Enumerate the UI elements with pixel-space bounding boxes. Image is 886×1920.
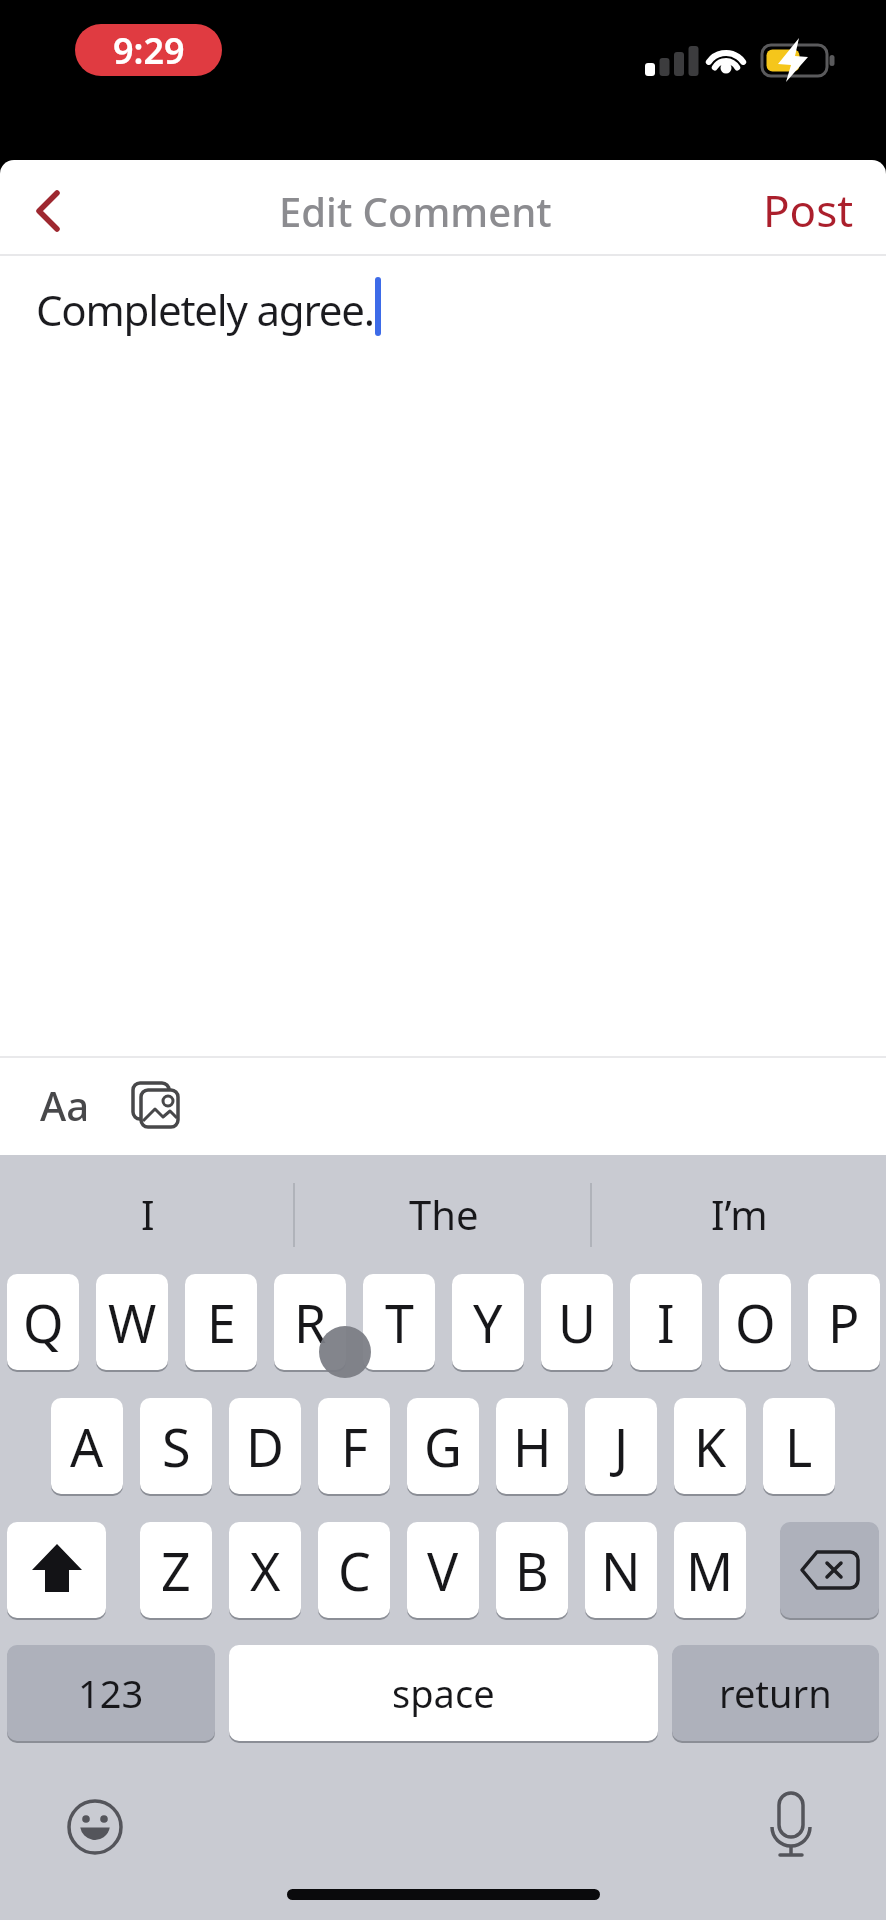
staticText: X [250, 1535, 281, 1606]
staticText: return [719, 1667, 832, 1719]
button[interactable]: B [496, 1522, 568, 1618]
staticText: R [294, 1287, 327, 1358]
button[interactable]: Q [7, 1274, 79, 1370]
button[interactable]: W [96, 1274, 168, 1370]
button[interactable]: N [585, 1522, 657, 1618]
button[interactable]: T [363, 1274, 435, 1370]
staticText: B [515, 1535, 549, 1606]
button[interactable]: The [296, 1172, 591, 1256]
staticText: Aa [40, 1078, 90, 1132]
staticText: H [513, 1411, 552, 1482]
staticText: V [427, 1535, 459, 1606]
button[interactable]: K [674, 1398, 746, 1494]
staticText: E [207, 1287, 236, 1358]
button[interactable]: 9:29 [75, 24, 222, 76]
button[interactable]: S [140, 1398, 212, 1494]
button[interactable]: P [808, 1274, 880, 1370]
staticText: P [828, 1287, 860, 1358]
button[interactable]: E [185, 1274, 257, 1370]
button[interactable]: G [407, 1398, 479, 1494]
button[interactable] [780, 1522, 879, 1618]
staticText: G [424, 1411, 462, 1482]
staticText: K [694, 1411, 727, 1482]
staticText: I’m [711, 1187, 768, 1241]
button[interactable]: F [318, 1398, 390, 1494]
staticText: Q [23, 1287, 64, 1358]
staticText: D [246, 1411, 284, 1482]
button[interactable]: Post [750, 180, 866, 240]
button[interactable]: return [672, 1645, 879, 1741]
staticText: space [392, 1667, 495, 1719]
button[interactable] [60, 1792, 130, 1862]
staticText: L [785, 1411, 813, 1482]
button[interactable]: J [585, 1398, 657, 1494]
button[interactable]: O [719, 1274, 791, 1370]
staticText: J [614, 1411, 629, 1482]
button[interactable]: R [274, 1274, 346, 1370]
staticText: Edit Comment [279, 184, 552, 238]
staticText: S [162, 1411, 191, 1482]
button[interactable]: Aa [30, 1075, 100, 1135]
staticText: The [409, 1187, 479, 1241]
button[interactable]: Y [452, 1274, 524, 1370]
button[interactable]: space [229, 1645, 658, 1741]
staticText: 9:29 [113, 26, 185, 75]
button[interactable]: U [541, 1274, 613, 1370]
staticText: Z [161, 1535, 191, 1606]
button[interactable]: X [229, 1522, 301, 1618]
staticText: F [341, 1411, 368, 1482]
button[interactable] [125, 1075, 187, 1137]
button[interactable] [756, 1788, 826, 1864]
button[interactable]: 123 [7, 1645, 215, 1741]
staticText: Post [763, 180, 854, 240]
staticText: O [735, 1287, 776, 1358]
staticText: A [70, 1411, 104, 1482]
button[interactable]: I’m [592, 1172, 886, 1256]
button[interactable] [20, 178, 90, 244]
button[interactable] [7, 1522, 106, 1618]
staticText: Y [473, 1287, 503, 1358]
staticText: M [686, 1535, 734, 1606]
staticText: I [657, 1287, 675, 1358]
button[interactable]: Z [140, 1522, 212, 1618]
button[interactable]: D [229, 1398, 301, 1494]
staticText: I [141, 1187, 155, 1241]
button[interactable]: C [318, 1522, 390, 1618]
staticText: T [385, 1287, 414, 1358]
button[interactable]: A [51, 1398, 123, 1494]
button[interactable]: L [763, 1398, 835, 1494]
staticText: W [108, 1287, 157, 1358]
button[interactable]: M [674, 1522, 746, 1618]
staticText: Completely agree. [36, 281, 374, 338]
staticText: N [601, 1535, 641, 1606]
button[interactable]: V [407, 1522, 479, 1618]
staticText: U [558, 1287, 597, 1358]
button[interactable]: H [496, 1398, 568, 1494]
button[interactable]: I [630, 1274, 702, 1370]
button[interactable]: I [0, 1172, 295, 1256]
staticText: C [338, 1535, 371, 1606]
staticText: 123 [78, 1667, 144, 1719]
